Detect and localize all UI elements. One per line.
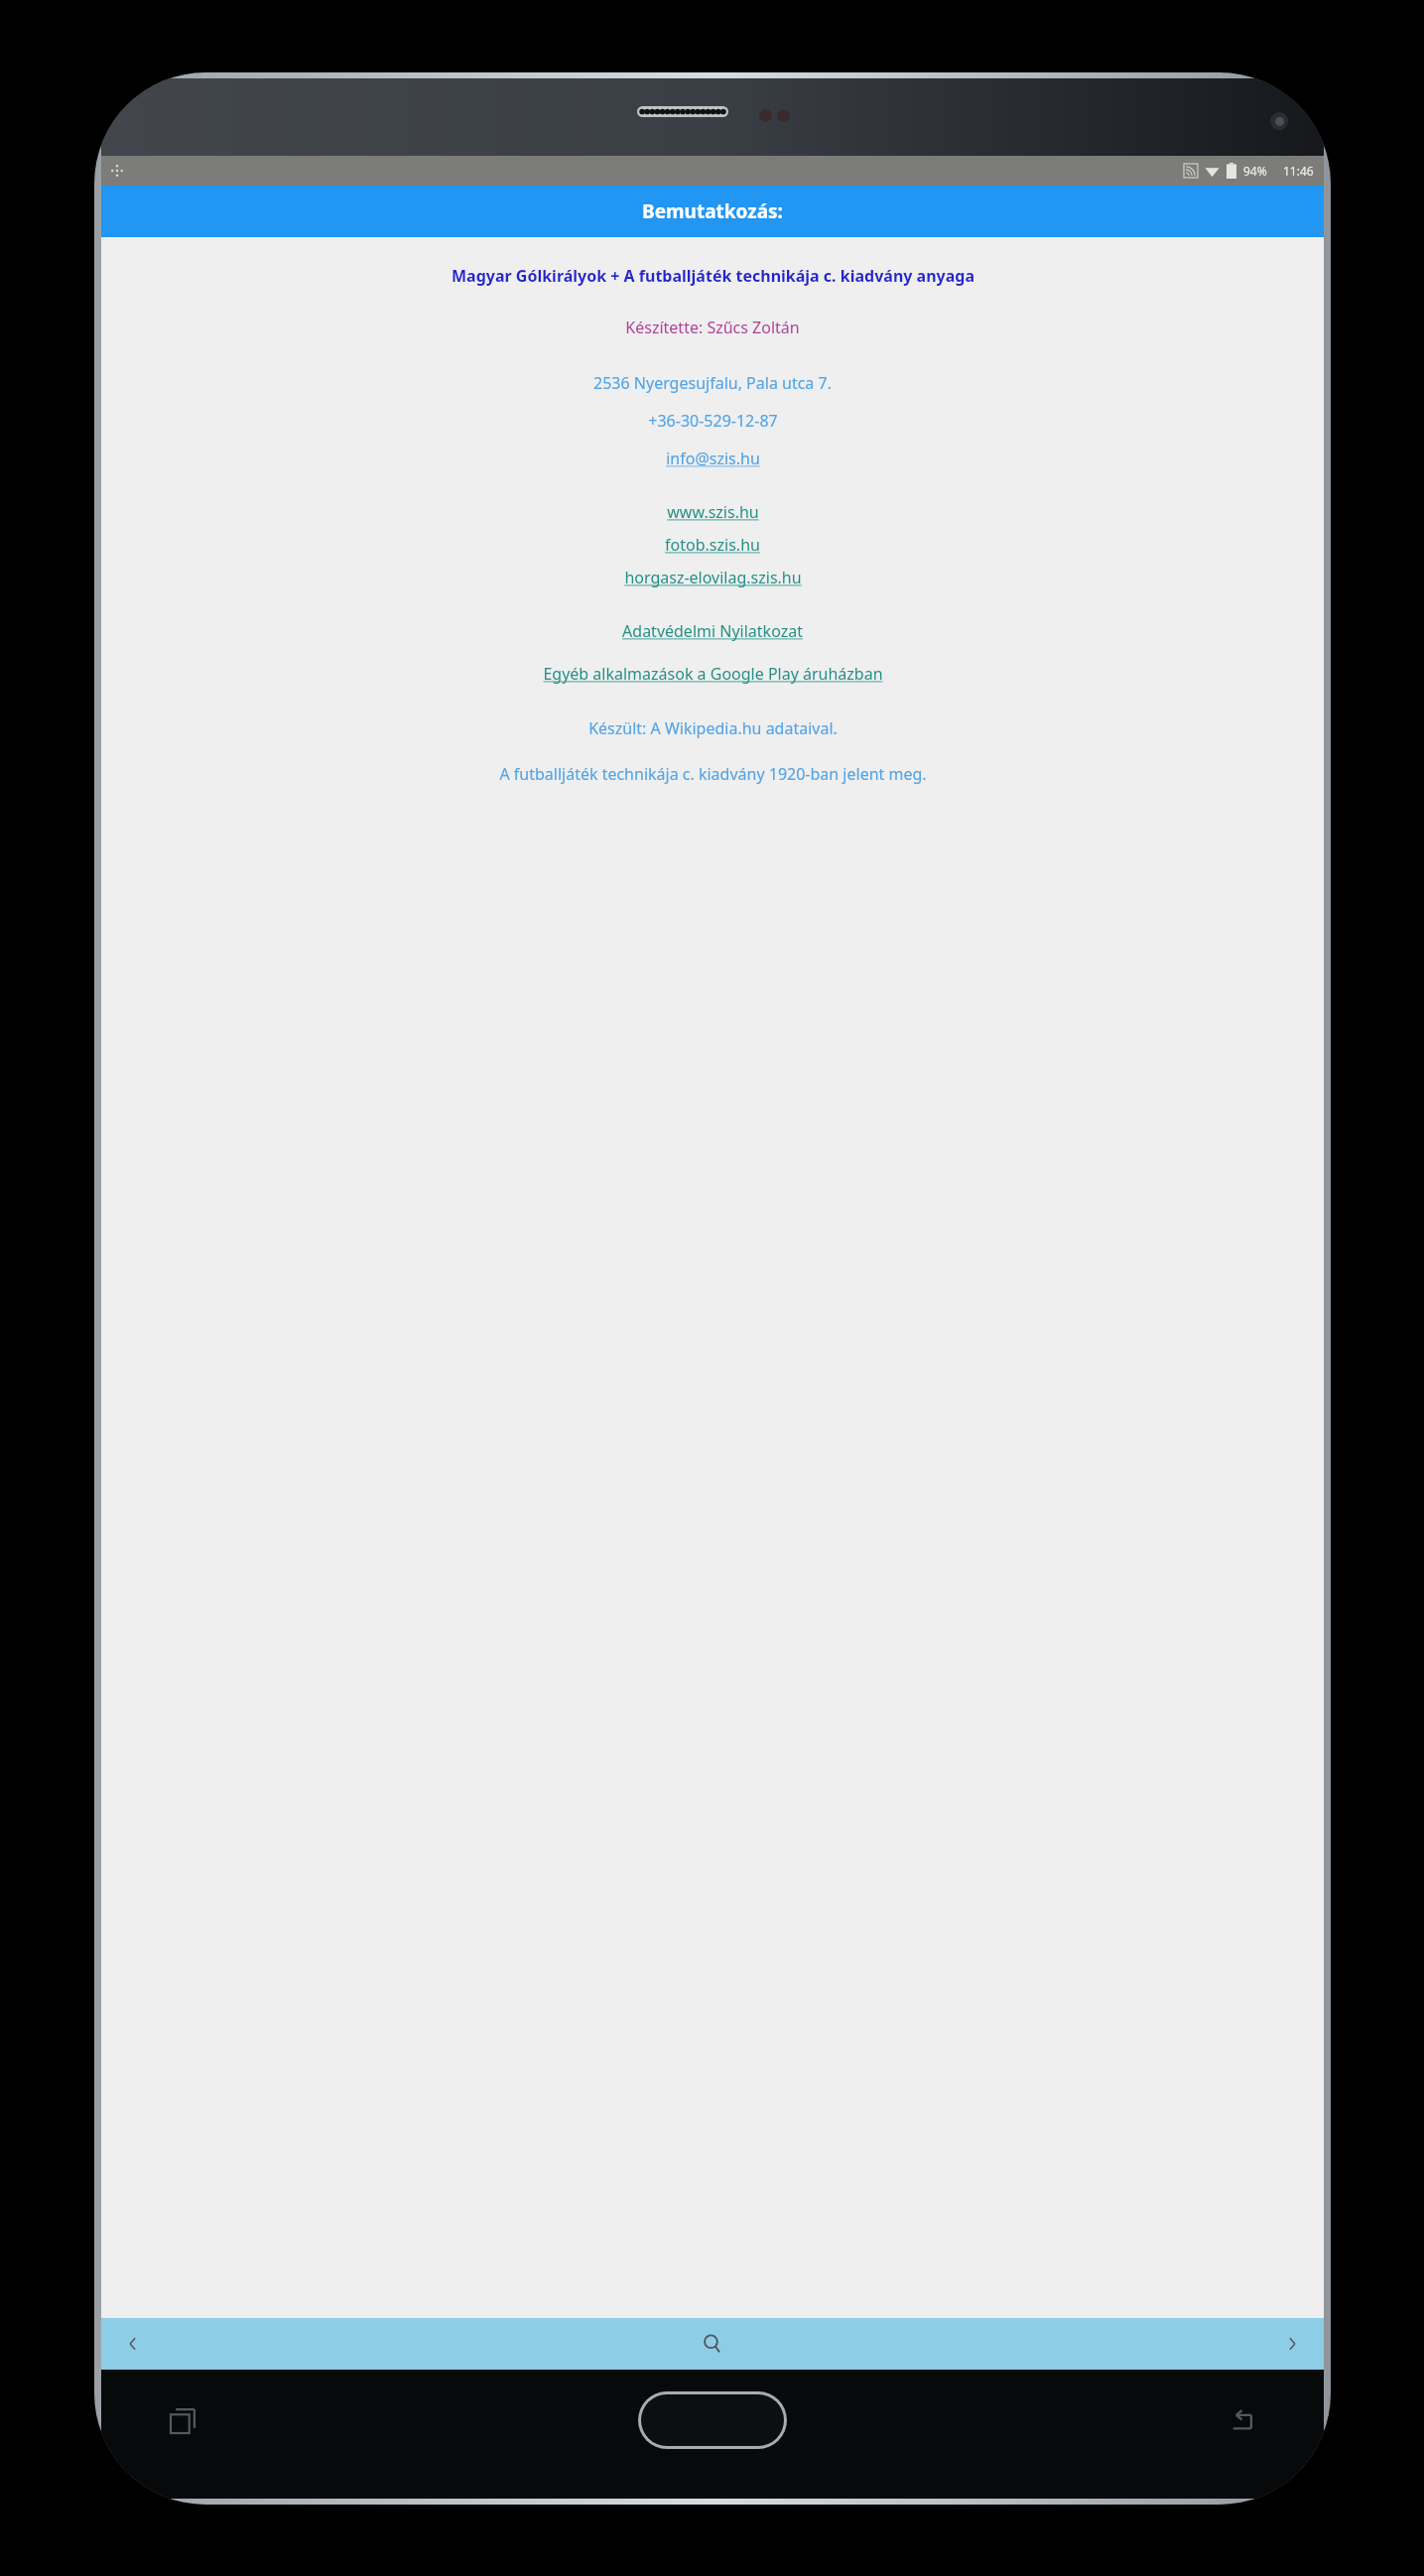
staticText: Készítette: Szűcs Zoltán [625,317,800,338]
button[interactable]: www.szis.hu [667,501,759,523]
button[interactable]: fotob.szis.hu [665,534,760,556]
staticText: Bemutatkozás: [642,198,783,224]
staticText: info@szis.hu [666,448,760,469]
button[interactable]: info@szis.hu [666,448,760,469]
button[interactable]: Adatvédelmi Nyilatkozat [622,620,803,642]
button[interactable]: Search [677,2318,748,2370]
staticText: 94% [1243,163,1267,179]
button[interactable]: horgasz-elovilag.szis.hu [624,567,802,588]
staticText: Készült: A Wikipedia.hu adataival. [588,717,838,739]
staticText: Egyéb alkalmazások a Google Play áruházb… [543,663,883,685]
button[interactable]: Previous [101,2318,165,2370]
staticText: horgasz-elovilag.szis.hu [624,567,802,588]
staticText: Magyar Gólkirályok + A futballjáték tech… [452,265,974,287]
staticText: A futballjáték technikája c. kiadvány 19… [499,763,927,785]
button[interactable]: Egyéb alkalmazások a Google Play áruházb… [543,663,883,685]
button[interactable]: Back [1221,2399,1262,2441]
button[interactable]: Next [1260,2318,1324,2370]
staticText: 2536 Nyergesujfalu, Pala utca 7. [593,372,832,394]
staticText: fotob.szis.hu [665,534,760,556]
button[interactable]: Recents [163,2399,204,2441]
staticText: Adatvédelmi Nyilatkozat [622,620,803,642]
staticText: 11:46 [1283,163,1314,179]
staticText: www.szis.hu [667,501,759,523]
staticText: +36-30-529-12-87 [648,410,778,432]
button[interactable]: Home [641,2394,784,2446]
